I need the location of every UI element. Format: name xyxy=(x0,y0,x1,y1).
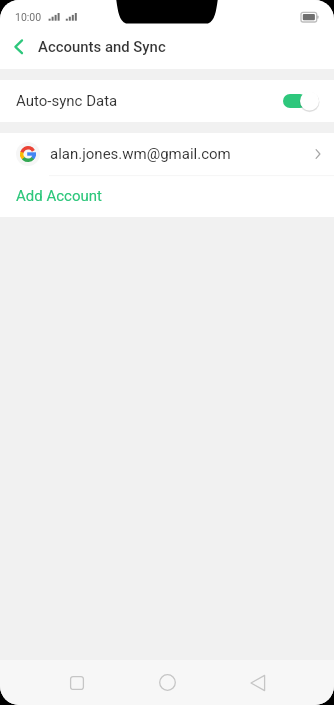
staticText: Accounts and Sync xyxy=(38,38,166,55)
button[interactable]: Recent apps xyxy=(54,660,99,705)
button[interactable]: Auto-sync Data toggle xyxy=(283,90,319,112)
staticText: Auto-sync Data xyxy=(16,92,118,110)
button[interactable]: Back xyxy=(235,660,280,705)
button[interactable]: Auto-sync Data xyxy=(0,80,334,122)
staticText: alan.jones.wm@gmail.com xyxy=(50,145,231,163)
staticText: 10:00 xyxy=(15,11,42,23)
button[interactable]: alan.jones.wm@gmail.com xyxy=(0,133,334,175)
button[interactable]: Home xyxy=(145,660,190,705)
staticText: Add Account xyxy=(16,187,102,205)
button[interactable]: Back xyxy=(0,30,38,69)
button[interactable]: Add Account xyxy=(0,176,334,217)
